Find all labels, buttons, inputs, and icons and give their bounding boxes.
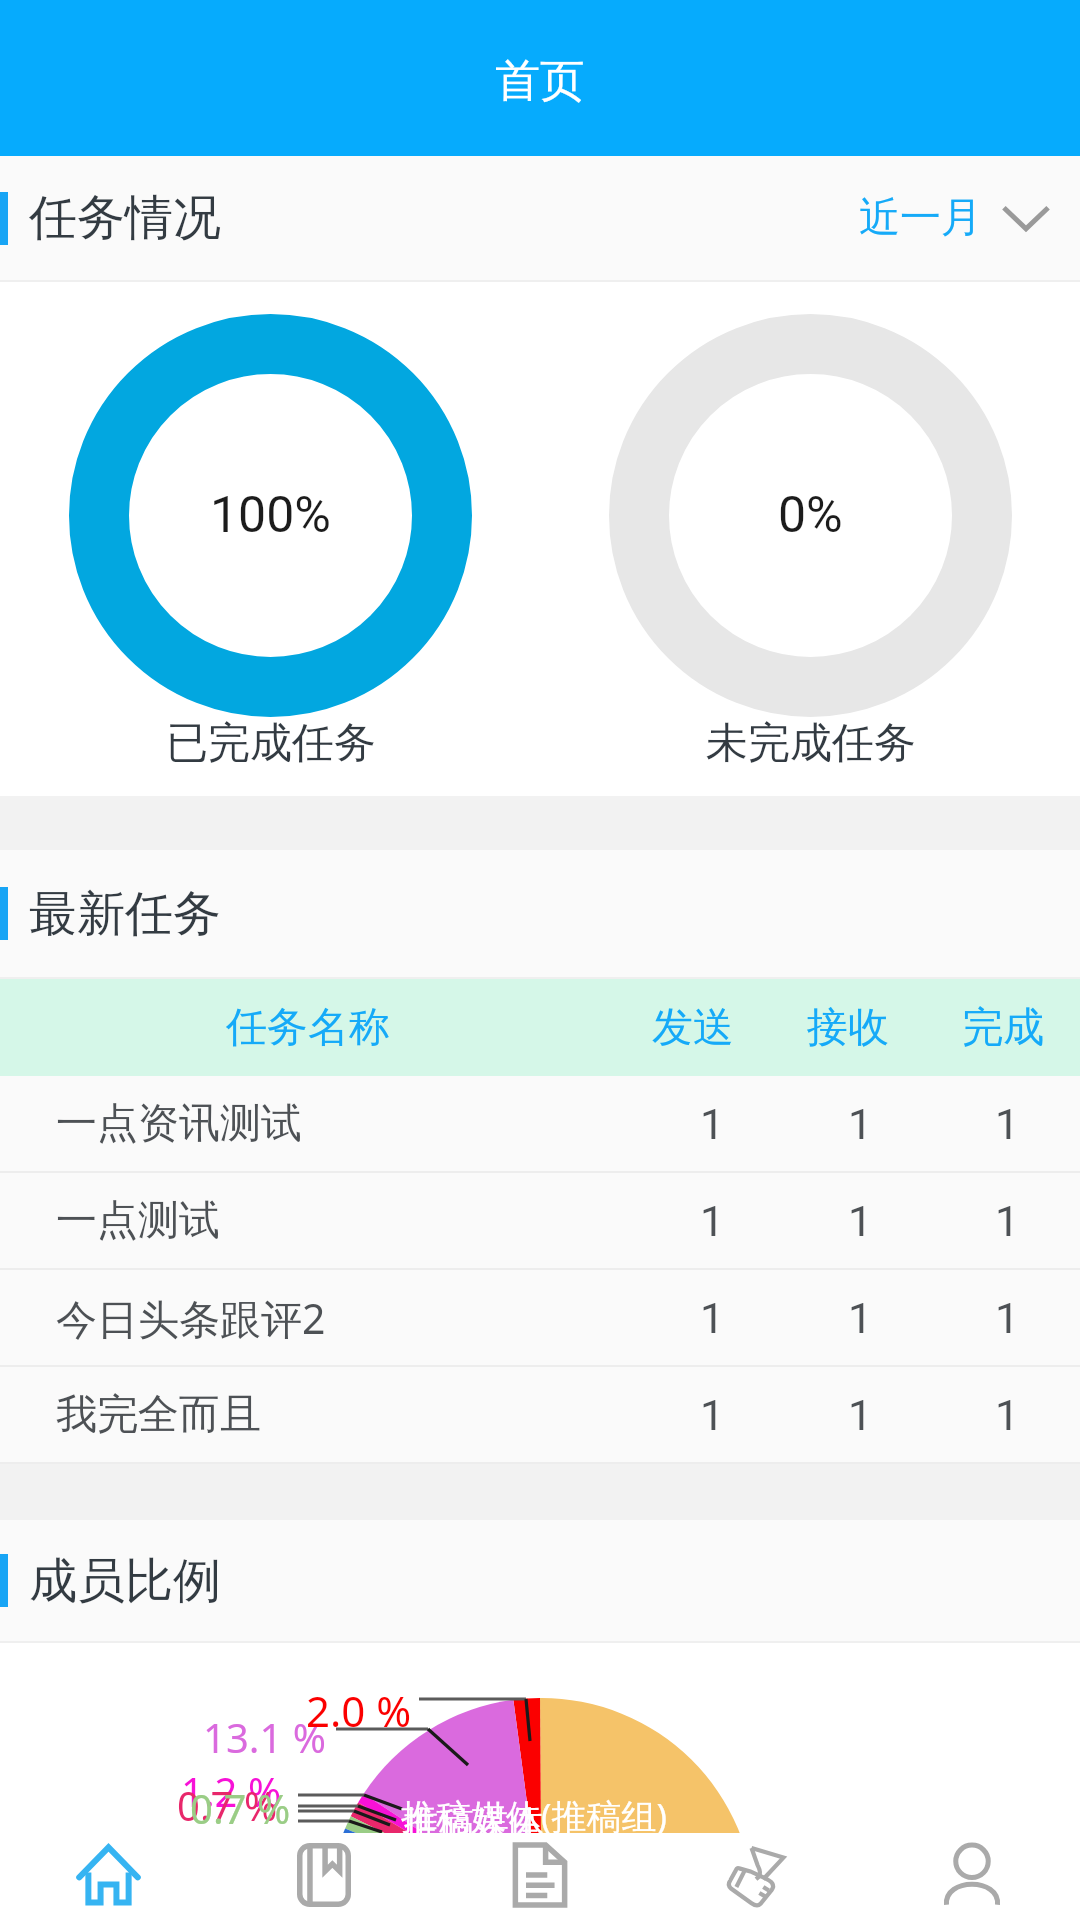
staticText: 0.7 %	[190, 1781, 291, 1833]
staticText: 我完全而且	[56, 1389, 261, 1441]
staticText: 1	[995, 1196, 1020, 1246]
staticText: 一点资讯测试	[56, 1098, 302, 1150]
staticText: 1	[848, 1293, 873, 1343]
button[interactable]: 近一月	[859, 192, 1050, 244]
staticText: 1	[700, 1099, 725, 1149]
staticText: 1	[700, 1196, 725, 1246]
staticText: 成员比例	[29, 1551, 221, 1611]
staticText: 1	[848, 1390, 873, 1440]
staticText: 近一月	[859, 192, 982, 244]
button[interactable]: Home	[0, 1829, 216, 1920]
staticText: 1	[848, 1099, 873, 1149]
button[interactable]: Publish	[648, 1829, 864, 1920]
staticText: 任务名称	[226, 1002, 390, 1054]
staticText: 首页	[495, 53, 585, 110]
staticText: 最新任务	[29, 884, 221, 944]
button[interactable]: Library	[216, 1829, 432, 1920]
staticText: 1	[995, 1099, 1020, 1149]
staticText: 已完成任务	[166, 717, 376, 770]
staticText: 推稿媒体(推稿组)	[401, 1792, 668, 1833]
staticText: 13.1 %	[203, 1710, 326, 1764]
staticText: 100%	[210, 486, 331, 545]
staticText: 推稿媒体	[404, 1801, 544, 1833]
button[interactable]: 今日头条跟评2	[0, 1270, 1080, 1365]
staticText: 0.7 %	[177, 1778, 278, 1832]
staticText: 1	[700, 1390, 725, 1440]
staticText: 未完成任务	[706, 717, 916, 770]
staticText: 1	[995, 1293, 1020, 1343]
staticText: 发送	[652, 1002, 734, 1054]
button[interactable]: Profile	[864, 1829, 1080, 1920]
button[interactable]: Documents	[432, 1829, 648, 1920]
button[interactable]: 一点资讯测试	[0, 1076, 1080, 1171]
staticText: 任务情况	[29, 188, 221, 248]
button[interactable]: 我完全而且	[0, 1367, 1080, 1462]
staticText: 1.2 %	[181, 1764, 282, 1818]
staticText: 接收	[807, 1002, 889, 1054]
staticText: 0%	[778, 486, 843, 545]
button[interactable]: 一点测试	[0, 1173, 1080, 1268]
staticText: 1	[700, 1293, 725, 1343]
staticText: 1	[848, 1196, 873, 1246]
staticText: 完成	[962, 1002, 1044, 1054]
staticText: 1	[995, 1390, 1020, 1440]
staticText: 今日头条跟评2	[56, 1290, 326, 1346]
staticText: 2.0 %	[306, 1682, 412, 1739]
staticText: 一点测试	[56, 1195, 220, 1247]
